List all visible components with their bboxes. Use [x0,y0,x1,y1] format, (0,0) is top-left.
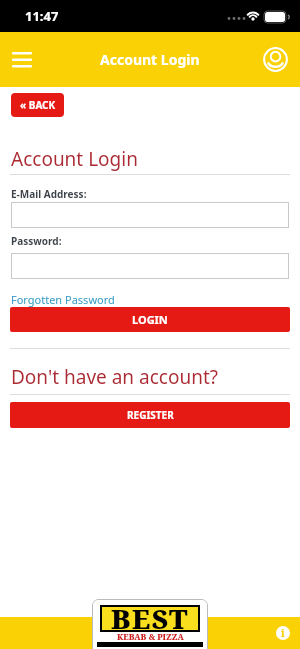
staticText: « BACK [20,98,56,112]
button[interactable] [261,45,290,74]
staticText: 11:47 [25,7,59,25]
button[interactable]: « BACK [11,93,64,117]
button[interactable]: REGISTER [10,402,290,428]
staticText: KEBAB & PIZZA [117,631,184,642]
button[interactable]: LOGIN [10,307,290,332]
staticText: Password: [11,234,62,248]
button[interactable] [6,45,38,75]
button[interactable] [11,202,289,228]
staticText: Account Login [100,50,200,69]
button[interactable]: Forgotten Password [11,292,115,307]
staticText: Account Login [11,146,138,172]
staticText: E-Mail Address: [11,187,87,201]
staticText: Don't have an account? [11,364,219,390]
staticText: BEST [111,600,189,637]
staticText: REGISTER [127,408,174,422]
button[interactable]: BEST [92,599,208,649]
staticText: LOGIN [132,312,168,327]
button[interactable] [11,253,289,279]
button[interactable]: i [269,619,296,646]
staticText: i [281,626,285,640]
